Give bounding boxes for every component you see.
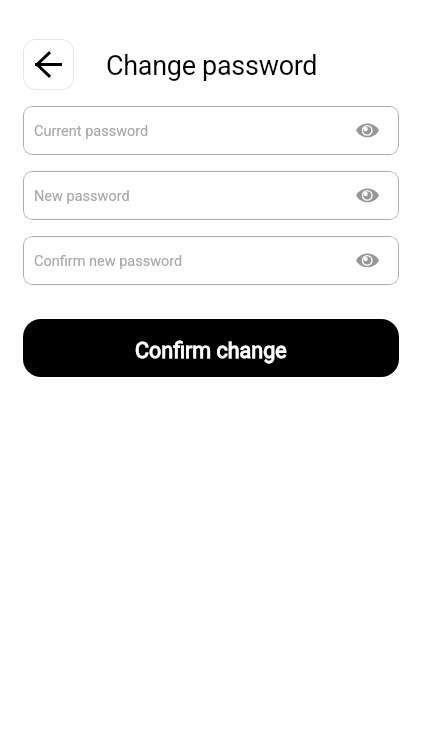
- button[interactable]: Back: [23, 39, 74, 90]
- staticText: Confirm change: [135, 338, 287, 363]
- button[interactable]: Confirm change: [23, 319, 399, 377]
- staticText: New password: [34, 188, 130, 205]
- button[interactable]: Current password: [23, 106, 399, 155]
- button[interactable]: Show password: [353, 115, 381, 147]
- staticText: Current password: [34, 123, 149, 140]
- button[interactable]: Confirm new password: [23, 236, 399, 285]
- button[interactable]: Show password: [353, 245, 381, 277]
- button[interactable]: New password: [23, 171, 399, 220]
- button[interactable]: Show password: [353, 180, 381, 212]
- staticText: Change password: [106, 50, 318, 82]
- staticText: Confirm new password: [34, 253, 183, 270]
